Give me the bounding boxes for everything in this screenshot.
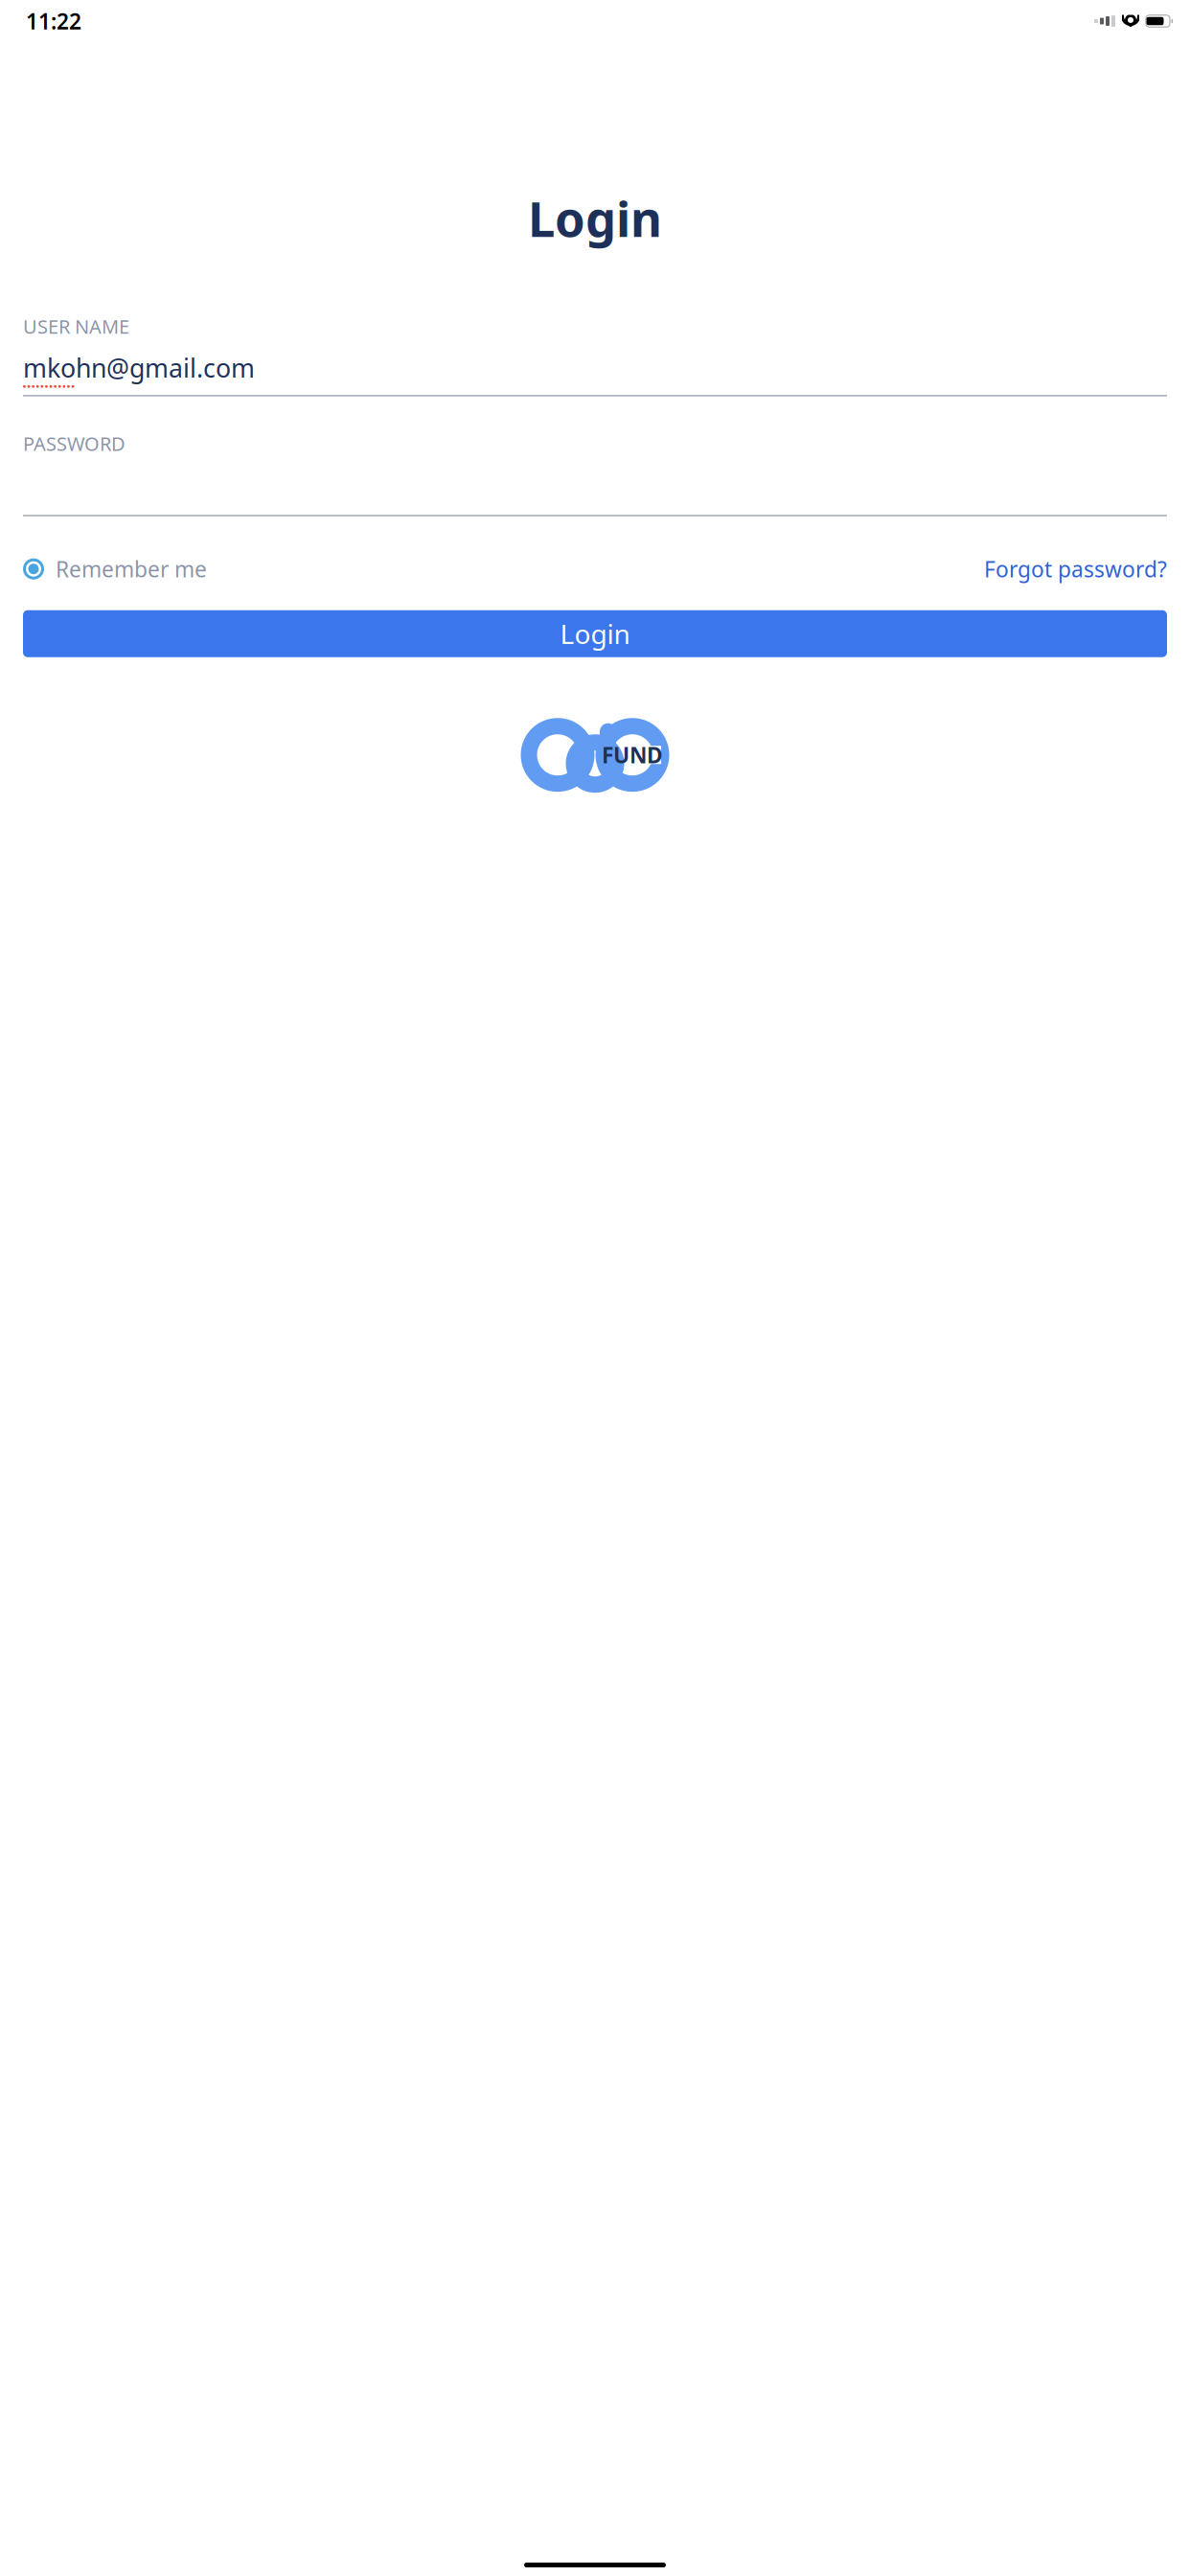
staticText: Forgot password? [984,554,1167,583]
staticText: mkohn@gmail.com [23,351,255,384]
button[interactable]: Remember me [23,549,207,589]
staticText: Login [528,186,662,250]
staticText: Remember me [56,554,207,583]
button[interactable]: Forgot password? [984,549,1167,589]
staticText: PASSWORD [23,431,126,456]
staticText: FUND [602,741,663,769]
staticText: 11:22 [26,7,81,35]
staticText: USER NAME [23,314,129,339]
button[interactable]: Login [23,610,1167,657]
staticText: Login [560,616,630,651]
